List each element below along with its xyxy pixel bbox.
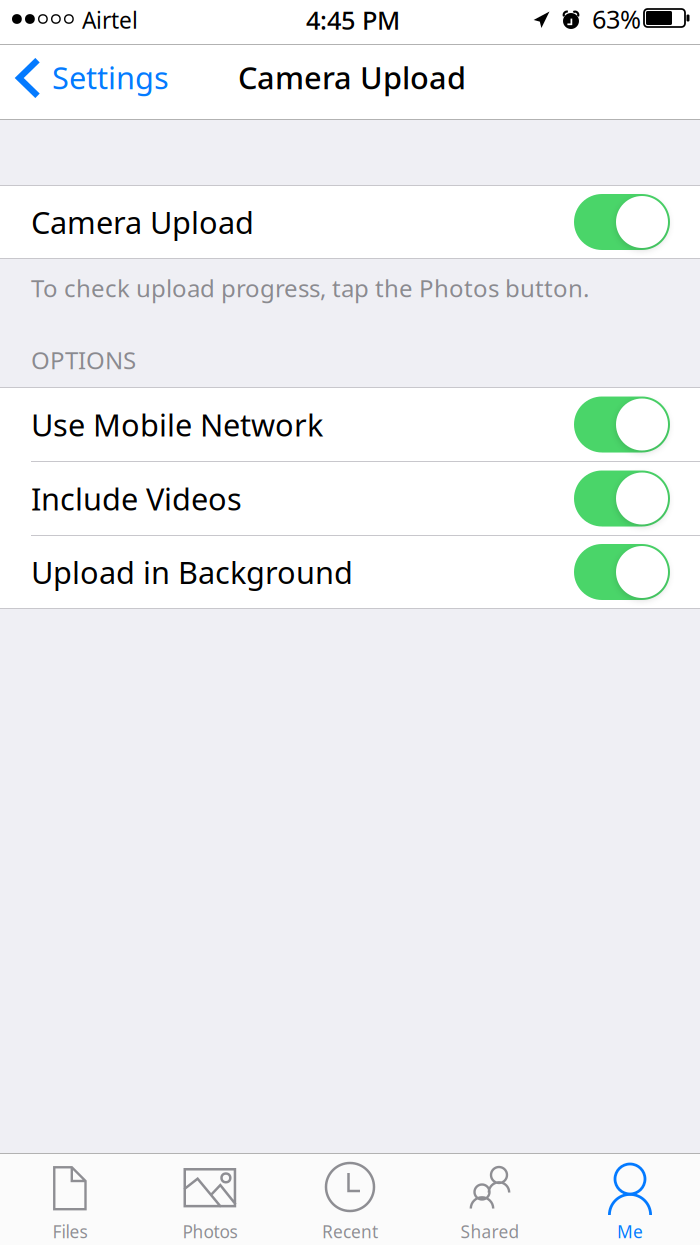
button[interactable]: Include Videos — [0, 462, 700, 535]
button[interactable]: Me — [560, 1153, 700, 1245]
staticText: Airtel — [82, 5, 138, 35]
button[interactable]: Recent — [280, 1153, 420, 1245]
staticText: Use Mobile Network — [31, 404, 323, 445]
staticText: Me — [617, 1220, 643, 1243]
staticText: Recent — [322, 1220, 378, 1243]
button[interactable]: Camera Upload — [0, 186, 700, 258]
button[interactable]: Files — [0, 1153, 140, 1245]
button[interactable]: Shared — [420, 1153, 560, 1245]
staticText: Upload in Background — [31, 552, 353, 592]
button[interactable]: Settings — [0, 45, 180, 119]
staticText: To check upload progress, tap the Photos… — [31, 272, 589, 304]
staticText: Camera Upload — [31, 202, 254, 242]
staticText: Settings — [52, 57, 169, 98]
staticText: Files — [52, 1220, 87, 1243]
staticText: Camera Upload — [238, 57, 466, 98]
button[interactable]: Photos — [140, 1153, 280, 1245]
staticText: Shared — [460, 1220, 519, 1243]
button[interactable]: Use Mobile Network — [0, 388, 700, 461]
staticText: 4:45 PM — [306, 3, 400, 37]
staticText: Include Videos — [31, 478, 242, 519]
staticText: OPTIONS — [31, 344, 136, 376]
button[interactable]: Upload in Background — [0, 536, 700, 608]
staticText: 63% — [592, 2, 641, 36]
staticText: Photos — [182, 1220, 237, 1243]
